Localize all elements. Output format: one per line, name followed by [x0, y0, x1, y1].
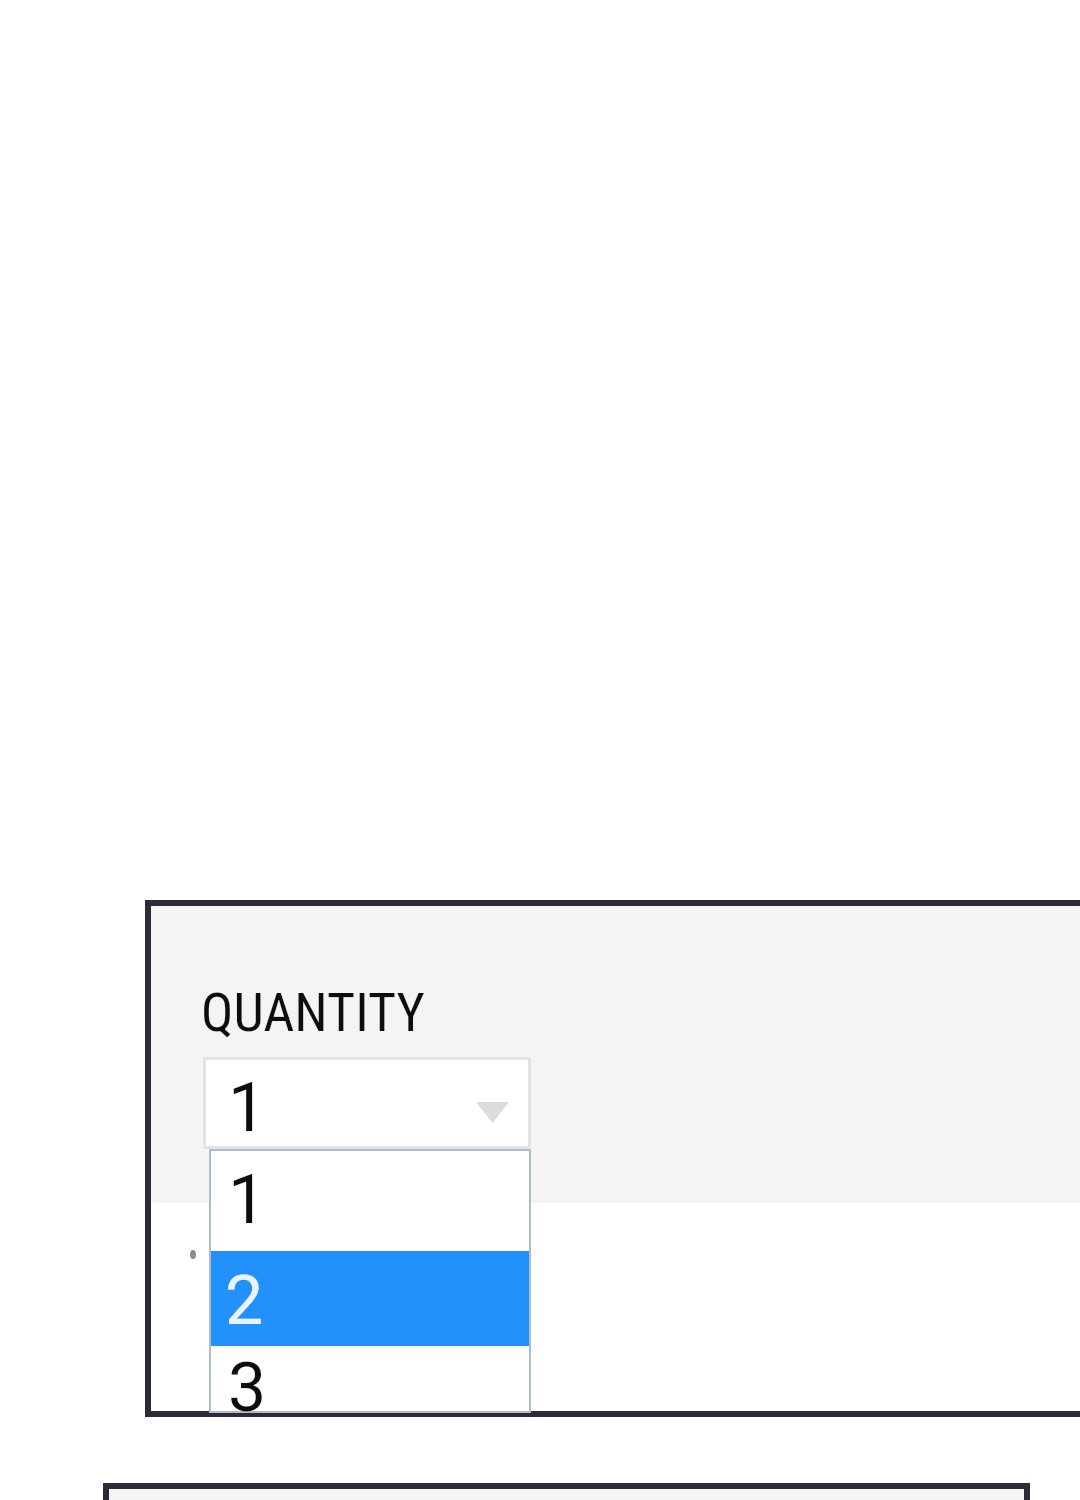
- other: Open quantity list: [476, 1102, 509, 1123]
- button[interactable]: [211, 1251, 529, 1346]
- staticText: 1: [228, 1068, 267, 1148]
- button[interactable]: [211, 1151, 529, 1251]
- button[interactable]: [151, 906, 1080, 1411]
- staticText: 3: [228, 1348, 267, 1428]
- staticText: QUANTITY: [201, 981, 425, 1044]
- staticText: 1: [228, 1160, 267, 1240]
- button[interactable]: [211, 1346, 529, 1411]
- staticText: 2: [225, 1261, 264, 1341]
- button[interactable]: Quantity, selected value 1: [206, 1060, 528, 1146]
